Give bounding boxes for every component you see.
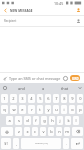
- staticText: r: [31, 107, 33, 112]
- staticText: 8: [63, 96, 66, 101]
- staticText: x: [26, 129, 29, 134]
- staticText: k: [67, 118, 70, 123]
- staticText: f: [35, 118, 37, 123]
- button[interactable]: u: [53, 105, 59, 114]
- staticText: s: [18, 118, 20, 123]
- staticText: n: [58, 129, 61, 134]
- staticText: t: [39, 107, 41, 112]
- button[interactable]: SEND: [70, 75, 80, 81]
- staticText: 4: [30, 96, 33, 101]
- staticText: c: [34, 129, 36, 134]
- staticText: d: [26, 118, 29, 123]
- staticText: w: [12, 107, 16, 112]
- button[interactable]: 3: [19, 94, 26, 103]
- staticText: y: [47, 107, 50, 112]
- staticText: q: [3, 107, 6, 112]
- button[interactable]: i: [61, 105, 67, 114]
- button[interactable]: n: [56, 127, 62, 136]
- staticText: a: [42, 86, 45, 91]
- button[interactable]: r: [28, 105, 35, 114]
- button[interactable]: 0: [77, 94, 83, 103]
- button[interactable]: a: [6, 116, 13, 125]
- staticText: u: [55, 107, 58, 112]
- button[interactable]: that: [54, 83, 76, 93]
- button[interactable]: y: [45, 105, 51, 114]
- button[interactable]: 6: [45, 94, 51, 103]
- staticText: SEND: [72, 77, 79, 80]
- button[interactable]: Keyboard settings: [0, 83, 10, 93]
- staticText: !#1: [4, 142, 8, 146]
- button[interactable]: 9: [69, 94, 75, 103]
- staticText: 6: [47, 96, 50, 101]
- staticText: l: [75, 118, 77, 123]
- staticText: 2: [12, 96, 15, 101]
- button[interactable]: 4: [28, 94, 35, 103]
- button[interactable]: t: [37, 105, 43, 114]
- button[interactable]: q: [1, 105, 8, 114]
- button[interactable]: Backspace: [72, 127, 83, 136]
- button[interactable]: p: [77, 105, 83, 114]
- button[interactable]: e: [19, 105, 26, 114]
- button[interactable]: More suggestions: [76, 84, 84, 92]
- staticText: ,: [16, 141, 17, 146]
- button[interactable]: d: [24, 116, 31, 125]
- button[interactable]: !#1: [1, 138, 11, 149]
- button[interactable]: v: [40, 127, 46, 136]
- staticText: o: [71, 107, 74, 112]
- staticText: and: [18, 86, 25, 91]
- button[interactable]: j: [57, 116, 63, 125]
- staticText: Recipient: [4, 19, 17, 23]
- staticText: 5: [39, 96, 42, 101]
- button[interactable]: k: [65, 116, 71, 125]
- button[interactable]: Add recipient: [72, 6, 84, 15]
- staticText: that: [61, 86, 69, 91]
- staticText: z: [18, 129, 20, 134]
- staticText: 9: [71, 96, 74, 101]
- button[interactable]: Choose contact: [72, 16, 84, 26]
- staticText: i: [63, 107, 65, 112]
- button[interactable]: g: [41, 116, 47, 125]
- staticText: NEW MESSAGE: [10, 9, 33, 13]
- staticText: p: [79, 107, 82, 112]
- button[interactable]: 7: [53, 94, 59, 103]
- button[interactable]: b: [48, 127, 54, 136]
- button[interactable]: Back: [0, 6, 10, 15]
- button[interactable]: English (US): [21, 138, 61, 149]
- button[interactable]: c: [32, 127, 38, 136]
- staticText: English (US): [35, 142, 48, 145]
- button[interactable]: x: [24, 127, 30, 136]
- staticText: g: [43, 118, 46, 123]
- staticText: 0: [79, 96, 82, 101]
- staticText: m: [65, 129, 69, 134]
- button[interactable]: 2: [10, 94, 17, 103]
- button[interactable]: Attach file: [2, 75, 8, 81]
- staticText: j: [59, 118, 61, 123]
- staticText: 1: [3, 96, 6, 101]
- button[interactable]: h: [49, 116, 55, 125]
- button[interactable]: 8: [61, 94, 67, 103]
- button[interactable]: a: [32, 83, 54, 93]
- staticText: 10:45: [54, 1, 64, 6]
- button[interactable]: o: [69, 105, 75, 114]
- button[interactable]: ,: [13, 138, 19, 149]
- button[interactable]: z: [15, 127, 22, 136]
- button[interactable]: f: [33, 116, 39, 125]
- button[interactable]: and: [10, 83, 32, 93]
- staticText: a: [8, 118, 11, 123]
- staticText: 7: [55, 96, 58, 101]
- button[interactable]: Emoji: [62, 75, 68, 81]
- button[interactable]: .: [63, 138, 69, 149]
- button[interactable]: 1: [1, 94, 8, 103]
- staticText: v: [42, 129, 45, 134]
- staticText: Type an SMS or chat message: [9, 76, 61, 81]
- button[interactable]: l: [73, 116, 79, 125]
- button[interactable]: 5: [37, 94, 43, 103]
- button[interactable]: s: [15, 116, 22, 125]
- button[interactable]: m: [64, 127, 70, 136]
- staticText: b: [50, 129, 53, 134]
- staticText: h: [51, 118, 54, 123]
- button[interactable]: Enter: [71, 138, 83, 149]
- button[interactable]: Shift: [1, 127, 13, 136]
- staticText: e: [21, 107, 24, 112]
- button[interactable]: w: [10, 105, 17, 114]
